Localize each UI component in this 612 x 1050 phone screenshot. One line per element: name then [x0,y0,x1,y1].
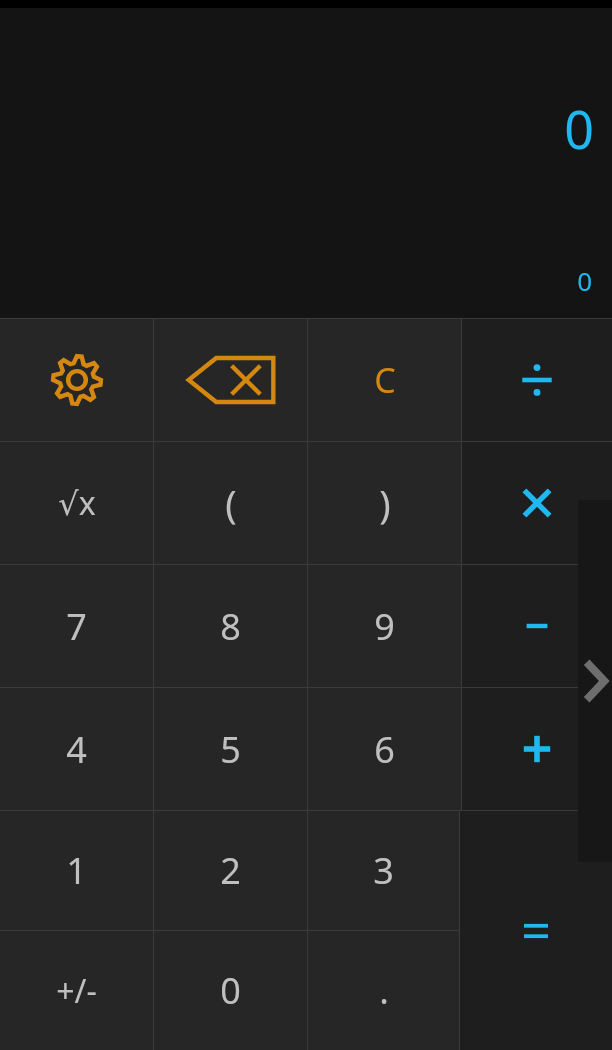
button[interactable]: Multiply [462,442,612,564]
button[interactable]: 5 [154,688,307,810]
staticText: 0 [564,93,594,164]
button[interactable]: Backspace [154,319,307,441]
button[interactable]: 4 [0,688,153,810]
staticText: 4 [66,725,87,774]
staticText: C [374,357,396,403]
staticText: . [379,966,389,1015]
staticText: 2 [220,846,241,895]
button[interactable]: . [308,931,459,1050]
staticText: ) [379,477,391,529]
staticText: 8 [220,602,241,651]
button[interactable]: Open panel [578,500,612,862]
button[interactable]: 0 [154,931,307,1050]
staticText: 0 [577,263,592,298]
button[interactable]: ( [154,442,307,564]
staticText: +/- [56,969,97,1013]
staticText: ( [225,477,237,529]
staticText: 7 [66,602,87,651]
button[interactable]: 1 [0,811,153,930]
button[interactable]: Plus [462,688,612,810]
button[interactable]: C [308,319,461,441]
button[interactable]: √x [0,442,153,564]
button[interactable]: +/- [0,931,153,1050]
staticText: 6 [374,725,395,774]
staticText: 3 [373,846,394,895]
button[interactable]: 9 [308,565,461,687]
button[interactable]: Minus [462,565,612,687]
staticText: 1 [66,846,87,895]
button[interactable]: Settings [0,319,153,441]
button[interactable]: 3 [308,811,459,930]
button[interactable]: Equals [460,811,612,1050]
staticText: √x [58,481,96,525]
staticText: 0 [220,966,241,1015]
button[interactable]: Divide [462,319,612,441]
button[interactable]: ) [308,442,461,564]
button[interactable]: 6 [308,688,461,810]
staticText: 9 [374,602,395,651]
staticText: 5 [220,725,241,774]
button[interactable]: 7 [0,565,153,687]
button[interactable]: 8 [154,565,307,687]
button[interactable]: 2 [154,811,307,930]
